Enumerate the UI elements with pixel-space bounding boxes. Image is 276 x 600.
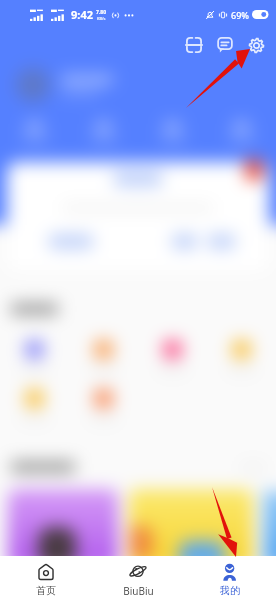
button[interactable] xyxy=(0,122,69,142)
button[interactable] xyxy=(8,489,118,569)
button[interactable] xyxy=(69,122,138,142)
staticText: 69% xyxy=(231,9,249,21)
staticText: 7.80 xyxy=(96,9,106,16)
staticText: 首页 xyxy=(36,584,56,597)
button[interactable] xyxy=(138,340,207,373)
button[interactable]: 首页 xyxy=(0,556,92,597)
staticText: 我的 xyxy=(220,584,240,597)
button[interactable] xyxy=(207,122,276,142)
button[interactable]: Scan xyxy=(179,30,209,60)
button[interactable] xyxy=(69,389,138,422)
button[interactable] xyxy=(138,122,207,142)
staticText: BiuBiu xyxy=(123,584,154,598)
button[interactable] xyxy=(207,340,276,373)
button[interactable] xyxy=(0,389,69,422)
button[interactable] xyxy=(69,340,138,373)
button[interactable]: Settings xyxy=(241,30,271,60)
button[interactable]: BiuBiu xyxy=(92,556,184,598)
button[interactable] xyxy=(7,162,269,270)
button[interactable]: Messages xyxy=(210,30,240,60)
button[interactable]: 我的 xyxy=(184,556,276,597)
staticText: KB/s xyxy=(97,16,106,21)
button[interactable] xyxy=(16,64,260,106)
button[interactable] xyxy=(129,489,253,569)
staticText: 9:42 xyxy=(71,7,93,22)
button[interactable] xyxy=(0,340,69,373)
